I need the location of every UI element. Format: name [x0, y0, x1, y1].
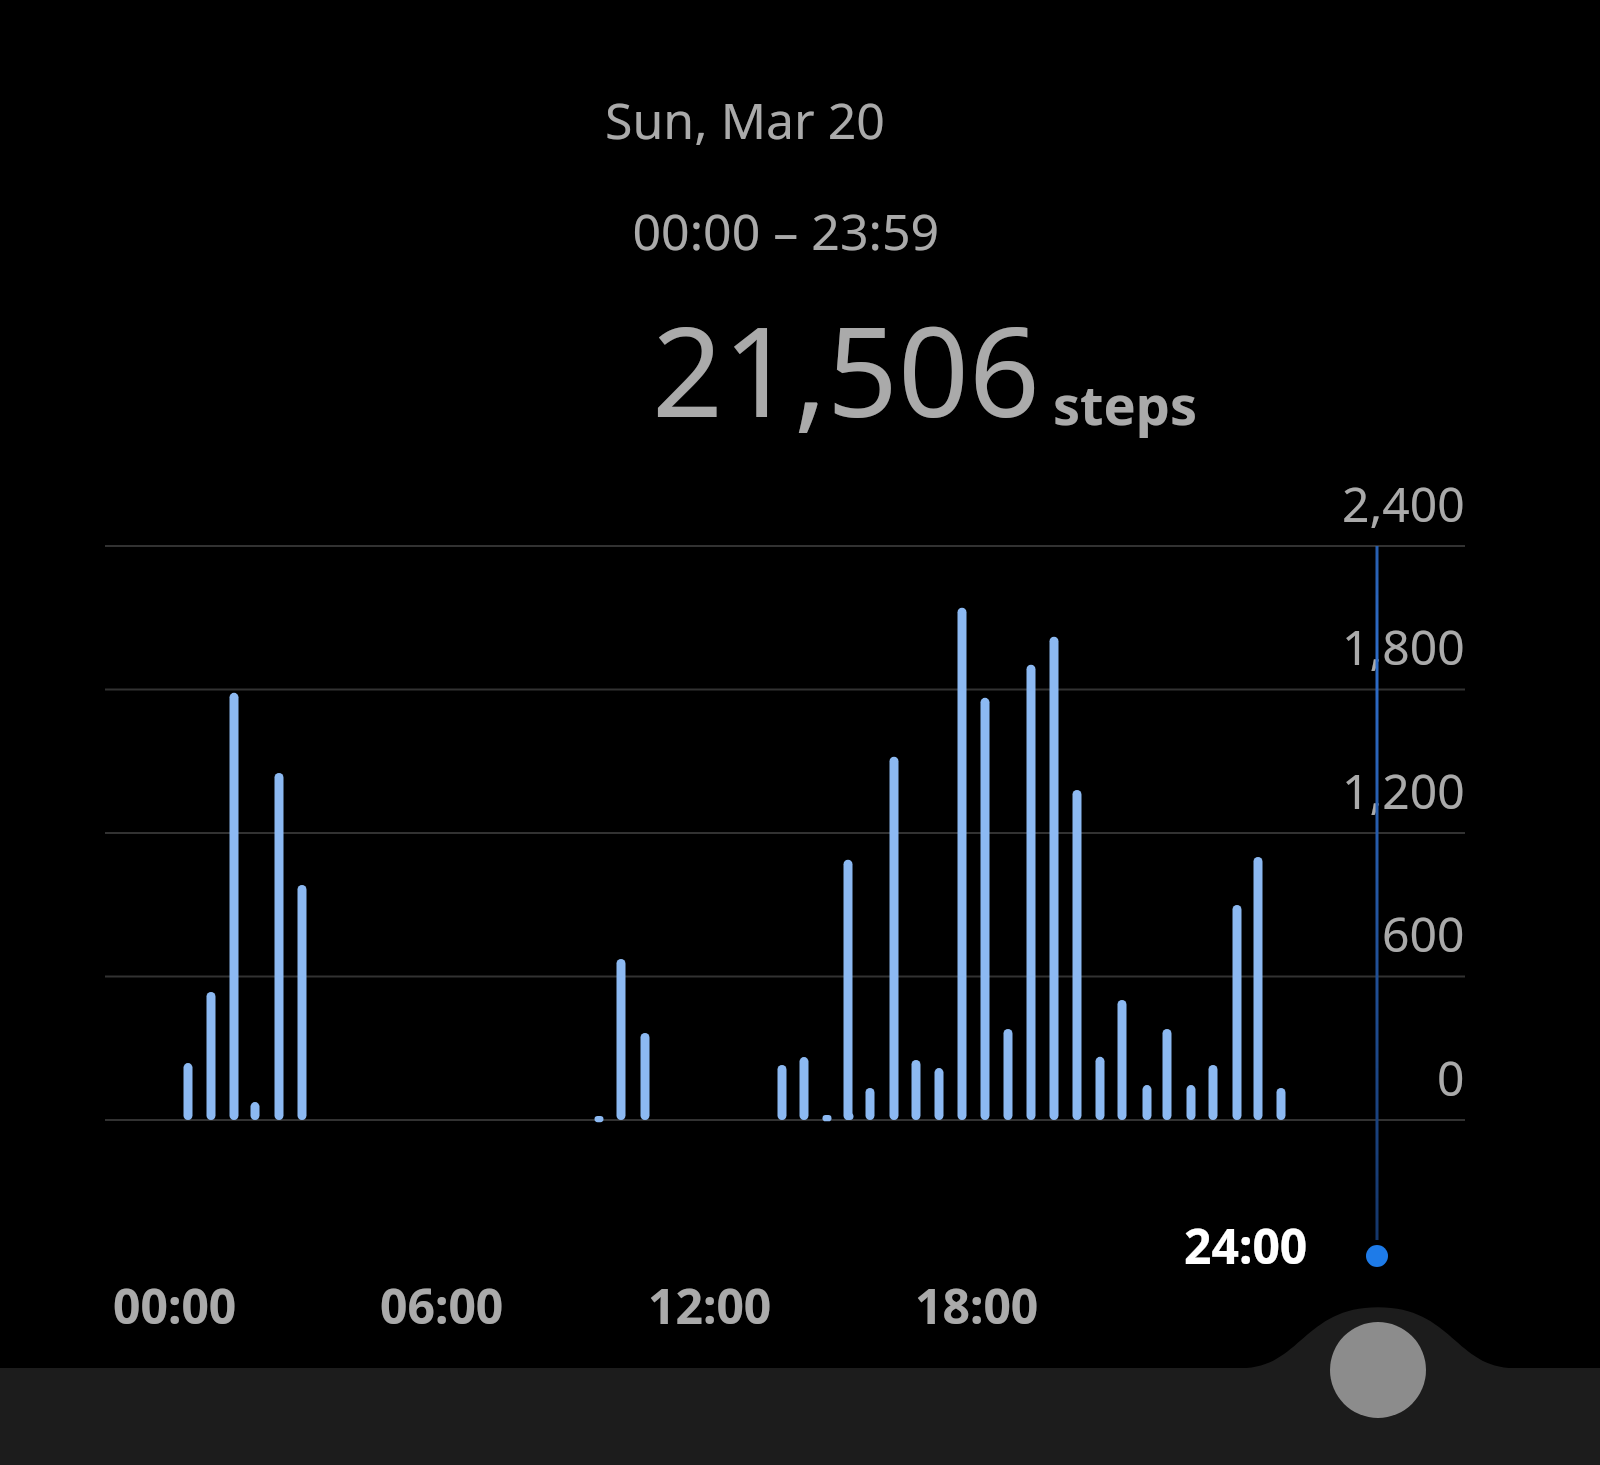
other: Add entry — [0, 0, 1600, 1465]
button[interactable]: Daily steps chart, 21,506 steps — [0, 0, 1600, 1465]
